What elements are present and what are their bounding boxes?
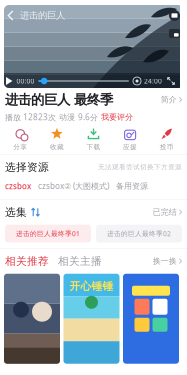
button[interactable]: 投币 [148,128,185,151]
button[interactable]: 收藏 [39,128,75,151]
staticText: 换一换 [153,256,177,266]
staticText: 相关主播 [58,255,102,268]
button[interactable]: 换一换 [153,256,182,266]
staticText: 开心锤锤 [69,280,113,293]
staticText: 收藏 [50,143,64,151]
staticText: 简介 [161,95,177,105]
staticText: 相关推荐 [5,255,49,268]
staticText: 已完结 [153,207,177,217]
button[interactable]: Full screen [162,77,180,85]
button[interactable]: 已完结 [153,207,182,217]
button[interactable]: Play [1,77,16,85]
staticText: 9.6分 [78,112,98,122]
staticText: 24:00 [144,77,162,85]
button[interactable]: Video quality [133,77,141,85]
staticText: 进击的巨人 最终季 [5,91,113,108]
staticText: 00:00 [16,77,34,85]
staticText: 分享 [13,143,27,151]
button[interactable]: 进击的巨人最终季02 [96,225,182,243]
button[interactable]: 应援 [112,128,148,151]
staticText: 进击的巨人最终季01 [16,229,80,238]
button[interactable]: 简介 [161,95,182,105]
staticText: 选集 [5,206,27,219]
button[interactable]: Recommended title 3 [123,274,179,364]
button[interactable]: Recommended title 2 [63,274,119,364]
staticText: 应援 [123,143,137,151]
button[interactable]: Cast to TV [169,10,180,21]
staticText: 我要评分 [101,112,133,122]
button[interactable]: 备用资源 [116,181,148,191]
staticText: 进击的巨人 [20,10,65,21]
button[interactable]: 相关推荐 [5,255,49,268]
button[interactable]: Sort episodes [31,208,40,217]
staticText: 备用资源 [116,181,148,191]
button[interactable]: czsbox② (大图模式) [38,181,109,191]
button[interactable]: 下载 [75,128,112,151]
button[interactable]: Recommended title 1 [4,274,60,364]
staticText: 进击的巨人最终季02 [107,229,171,238]
staticText: 动漫 [59,112,75,122]
button[interactable]: 进击的巨人最终季01 [5,225,91,243]
button[interactable]: Picture in picture [169,29,180,38]
button[interactable]: 分享 [2,128,39,151]
staticText: czsbox② (大图模式) [38,181,109,191]
button[interactable]: 相关主播 [58,255,102,268]
staticText: 下载 [86,143,100,151]
staticText: 选择资源 [5,161,49,174]
staticText: 投币 [160,143,174,151]
staticText: czsbox [5,181,31,191]
button[interactable]: 我要评分 [101,112,133,122]
staticText: 播放 12823次 [5,112,56,122]
staticText: 无法观看尝试切换下方资源 [98,163,182,171]
button[interactable]: czsbox [5,181,31,191]
button[interactable]: Back [5,9,16,22]
